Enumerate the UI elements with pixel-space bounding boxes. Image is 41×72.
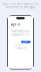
staticText: Sign in to your account to xyxy=(2,2,38,5)
staticText: Password xyxy=(11,33,23,36)
staticText: continue to the app xyxy=(6,5,35,9)
staticText: Email address xyxy=(11,29,28,33)
button[interactable]: Forgot password xyxy=(10,45,30,48)
staticText: Sign in xyxy=(10,23,20,26)
staticText: Sign in xyxy=(23,38,29,45)
button[interactable]: Sign in xyxy=(21,40,30,43)
staticText: Forgot password xyxy=(14,43,26,50)
